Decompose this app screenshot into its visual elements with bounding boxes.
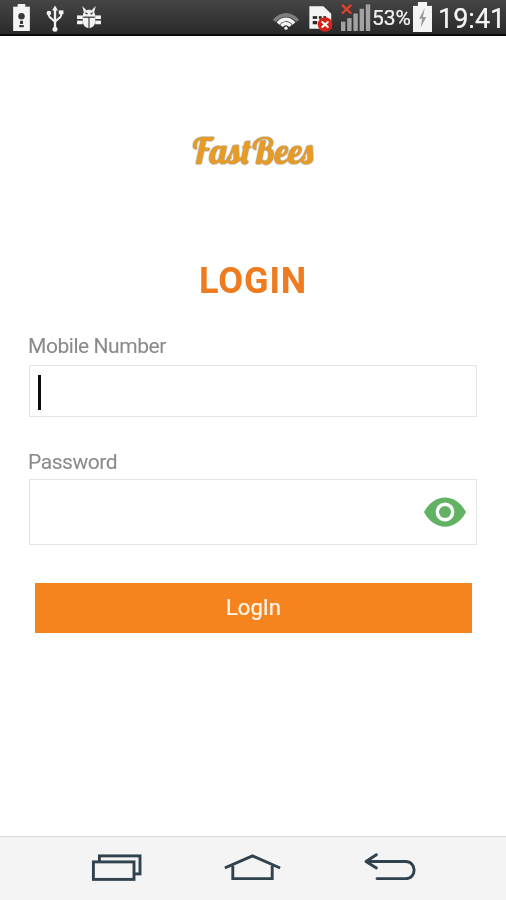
- button[interactable]: Show password: [29, 479, 477, 545]
- staticText: 19:41: [438, 3, 506, 35]
- staticText: LOGIN: [199, 260, 308, 302]
- button[interactable]: Recent apps: [90, 850, 146, 886]
- staticText: Password: [28, 450, 118, 475]
- button[interactable]: Show password: [422, 495, 468, 529]
- staticText: FastBees: [191, 128, 316, 172]
- staticText: FastBees: [192, 129, 317, 173]
- staticText: 53%: [372, 6, 411, 31]
- button[interactable]: LogIn: [35, 583, 472, 633]
- staticText: FastBees: [191, 129, 316, 173]
- button[interactable]: Back: [362, 850, 420, 888]
- staticText: FastBees: [191, 130, 316, 174]
- staticText: LogIn: [226, 595, 281, 621]
- staticText: FastBees: [190, 129, 315, 173]
- button[interactable]: [29, 365, 477, 417]
- staticText: Mobile Number: [28, 334, 166, 359]
- button[interactable]: Home: [224, 850, 282, 886]
